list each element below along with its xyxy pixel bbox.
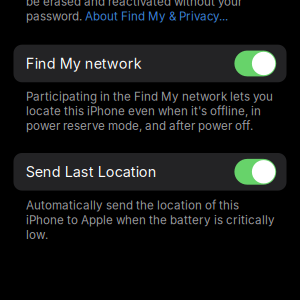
- staticText: iPhone to Apple when the battery is crit…: [26, 213, 275, 227]
- staticText: password.: [26, 9, 85, 23]
- button[interactable]: Send Last Location: [13, 153, 286, 191]
- staticText: locate this iPhone even when it's offlin…: [26, 104, 261, 118]
- button[interactable]: About Find My & Privacy...: [85, 9, 228, 23]
- staticText: Find My network: [26, 55, 142, 72]
- staticText: be erased and reactivated without your: [26, 0, 242, 9]
- staticText: power reserve mode, and after power off.: [26, 119, 253, 133]
- staticText: Send Last Location: [26, 163, 157, 180]
- staticText: low.: [26, 228, 48, 242]
- staticText: About Find My & Privacy...: [85, 9, 228, 23]
- staticText: Automatically send the location of this: [26, 198, 239, 212]
- button[interactable]: Find My network: [13, 45, 286, 82]
- staticText: Participating in the Find My network let…: [26, 89, 273, 103]
